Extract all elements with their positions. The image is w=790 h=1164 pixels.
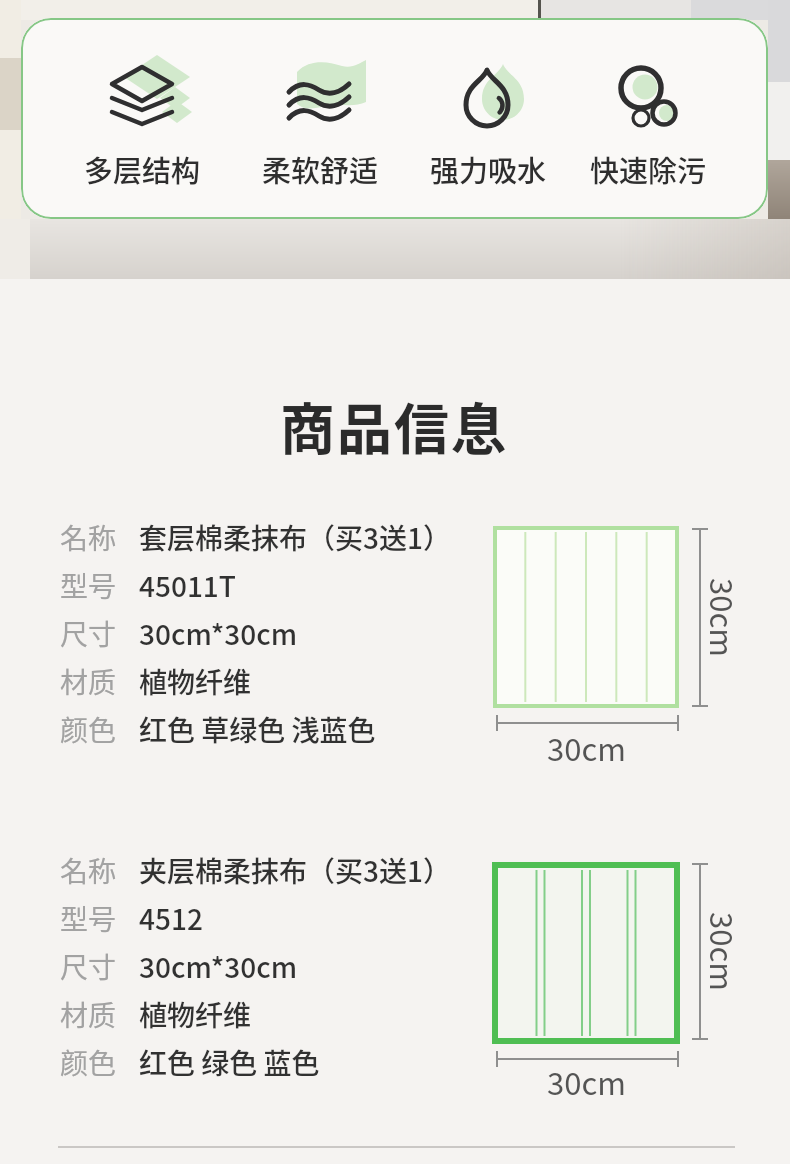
staticText: 商品信息: [280, 385, 509, 455]
staticText: 植物纤维: [139, 994, 252, 1035]
staticText: 快速除污: [590, 148, 707, 190]
staticText: 名称: [60, 517, 117, 558]
staticText: 强力吸水: [430, 148, 547, 190]
staticText: 30cm: [547, 725, 626, 770]
staticText: 颜色: [60, 1042, 117, 1083]
staticText: 30cm*30cm: [139, 613, 298, 654]
staticText: 4512: [139, 898, 203, 939]
staticText: 30cm*30cm: [139, 946, 298, 987]
staticText: 夹层棉柔抹布（买3送1）: [139, 850, 451, 891]
staticText: 型号: [60, 565, 117, 606]
staticText: 型号: [60, 898, 117, 939]
staticText: 30cm: [701, 578, 746, 657]
staticText: 30cm: [701, 912, 746, 991]
staticText: 名称: [60, 850, 117, 891]
button[interactable]: [21, 18, 768, 219]
staticText: 45011T: [139, 565, 236, 606]
staticText: 植物纤维: [139, 661, 252, 702]
staticText: 尺寸: [60, 613, 117, 654]
staticText: 30cm: [547, 1059, 626, 1104]
staticText: 颜色: [60, 709, 117, 750]
staticText: 套层棉柔抹布（买3送1）: [139, 517, 451, 558]
staticText: 红色 绿色 蓝色: [139, 1042, 320, 1083]
staticText: 多层结构: [84, 148, 201, 190]
staticText: 红色 草绿色 浅蓝色: [139, 709, 376, 750]
staticText: 材质: [60, 661, 117, 702]
staticText: 材质: [60, 994, 117, 1035]
staticText: 尺寸: [60, 946, 117, 987]
staticText: 柔软舒适: [262, 148, 379, 190]
